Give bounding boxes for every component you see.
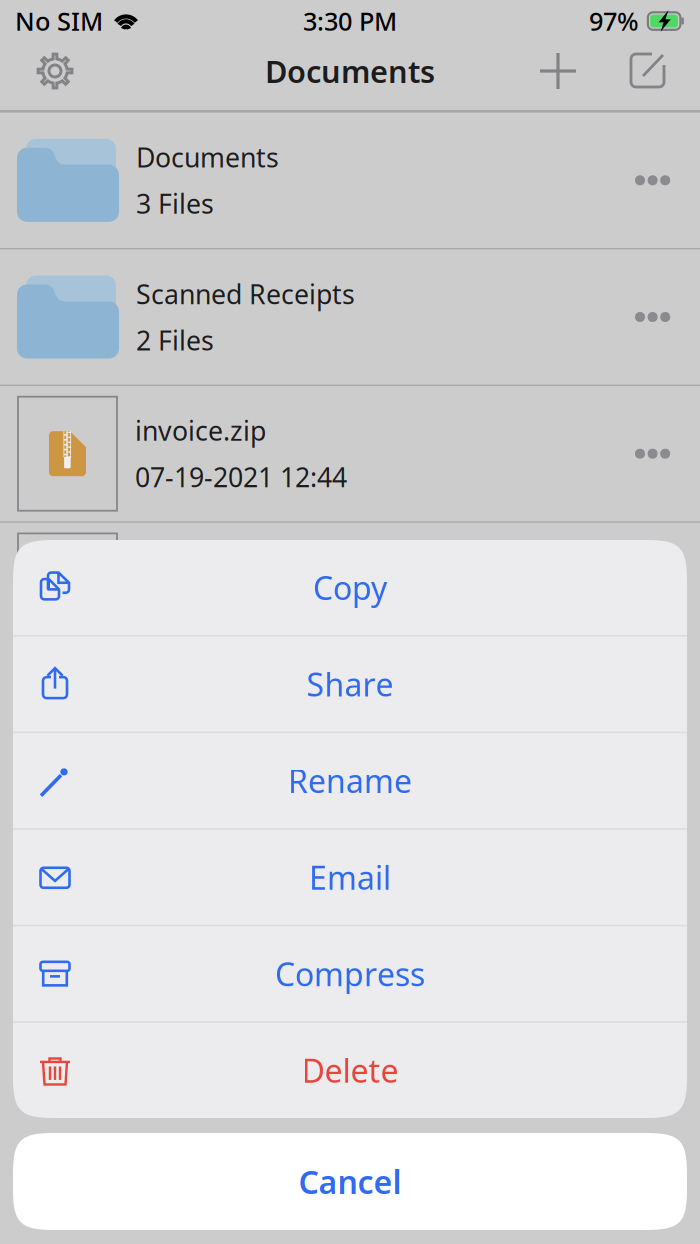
staticText: Rename — [288, 759, 412, 802]
staticText: Documents — [136, 139, 279, 175]
button[interactable]: Add — [529, 42, 587, 100]
staticText: Scanned Receipts — [136, 276, 355, 311]
button[interactable]: Scanned Receipts — [0, 249, 700, 385]
button[interactable]: receipt.pdf — [0, 523, 700, 658]
staticText: Compress — [275, 953, 425, 995]
staticText: 07-18-2021 09:12 — [135, 596, 347, 631]
staticText: invoice.zip — [135, 413, 266, 448]
staticText: Email — [309, 856, 391, 898]
button[interactable]: Documents — [0, 113, 700, 248]
staticText: 3:30 PM — [303, 4, 397, 38]
button[interactable]: invoice.zip — [0, 386, 700, 521]
staticText: Delete — [301, 1049, 398, 1092]
button[interactable]: Settings — [26, 42, 84, 100]
staticText: Cancel — [298, 1160, 401, 1203]
button[interactable]: Compress — [13, 926, 687, 1021]
button[interactable]: Copy — [13, 540, 687, 635]
staticText: 2 Files — [136, 322, 214, 358]
button[interactable]: Share — [13, 637, 687, 732]
staticText: Documents — [265, 51, 435, 91]
button[interactable]: Cancel — [13, 1133, 687, 1230]
button[interactable]: Compose — [619, 42, 677, 100]
button[interactable]: Rename — [13, 733, 687, 828]
staticText: 97% — [589, 4, 639, 38]
staticText: Copy — [313, 566, 387, 609]
button[interactable]: Email — [13, 830, 687, 925]
staticText: No SIM — [15, 4, 103, 38]
staticText: Share — [306, 663, 393, 705]
staticText: 07-19-2021 12:44 — [135, 459, 347, 495]
button[interactable]: Delete — [13, 1023, 687, 1118]
staticText: 3 Files — [136, 186, 214, 221]
